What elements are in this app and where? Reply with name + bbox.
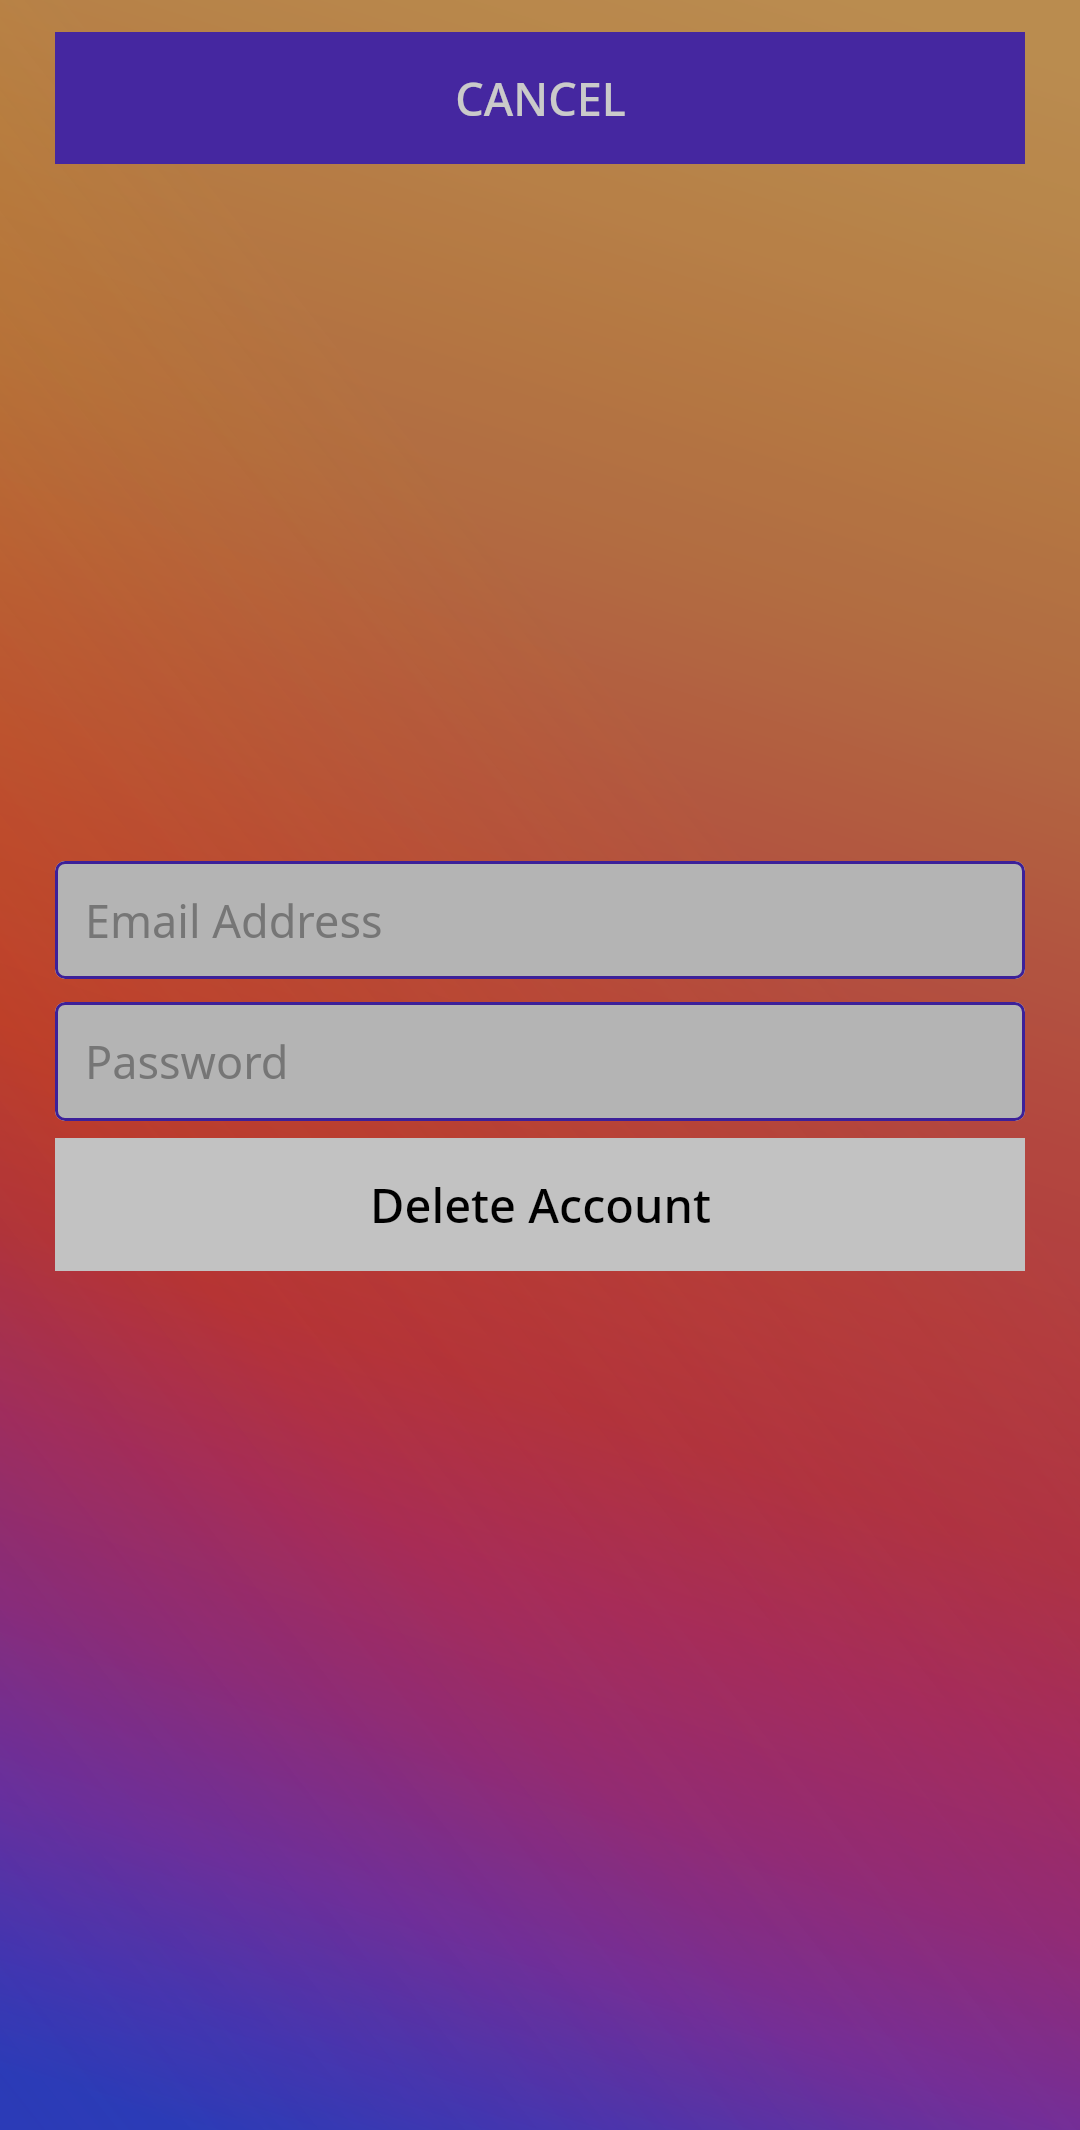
button[interactable]: CANCEL — [55, 32, 1025, 164]
staticText: CANCEL — [455, 68, 626, 129]
staticText: Email Address — [85, 890, 383, 951]
button[interactable]: Email Address — [55, 861, 1025, 979]
button[interactable]: Delete Account — [55, 1138, 1025, 1271]
button[interactable]: Password — [55, 1002, 1025, 1121]
staticText: Delete Account — [370, 1173, 711, 1237]
staticText: Password — [85, 1031, 289, 1092]
